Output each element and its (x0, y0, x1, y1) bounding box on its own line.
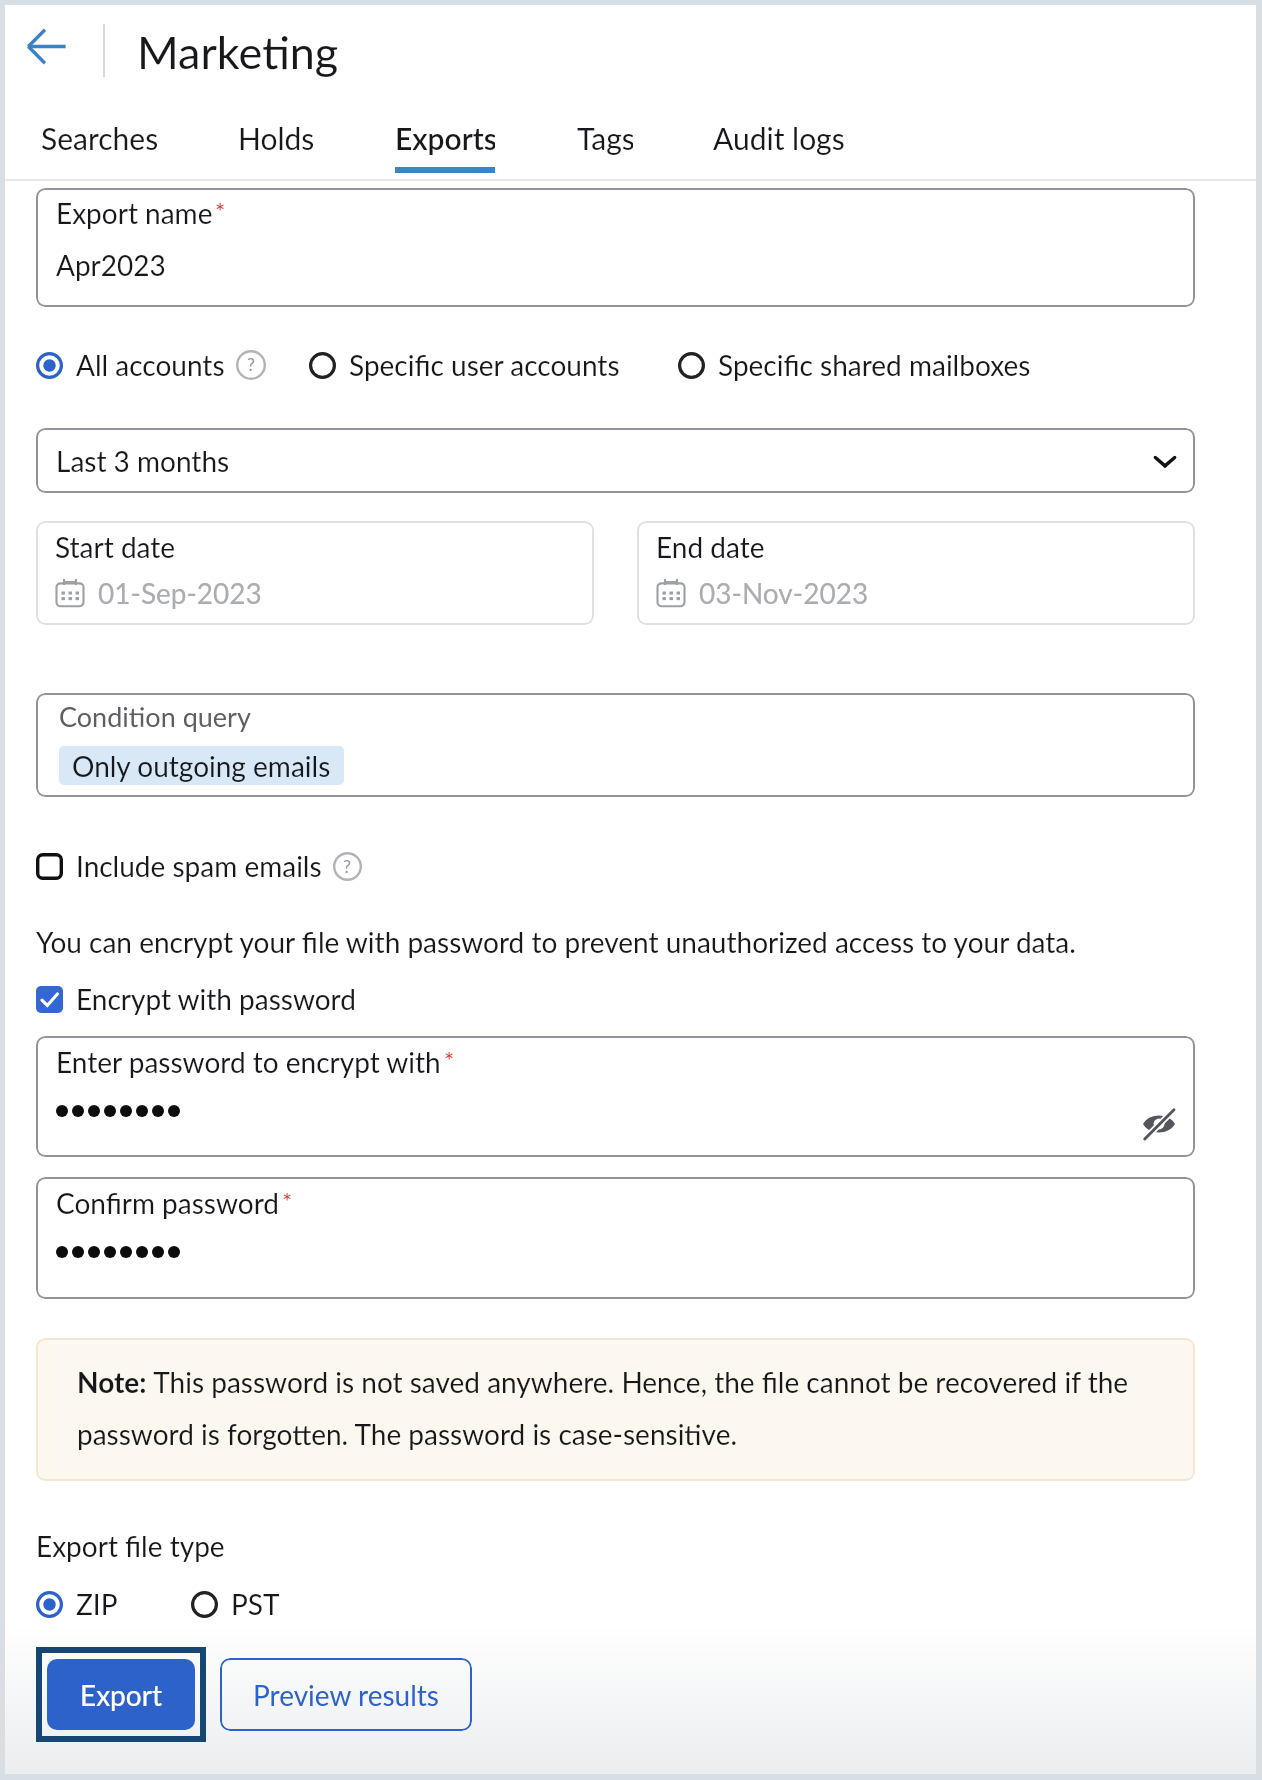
staticText: You can encrypt your file with password … (36, 925, 1076, 959)
staticText: Preview results (253, 1678, 439, 1712)
staticText: Exports (395, 120, 495, 156)
button[interactable]: Start date (36, 521, 594, 625)
button[interactable]: Audit logs (712, 98, 846, 181)
staticText: End date (656, 530, 765, 564)
staticText: * (444, 1045, 455, 1074)
staticText: Include spam emails (76, 849, 322, 883)
button[interactable]: Export name (36, 188, 1195, 307)
button[interactable]: Exports (395, 98, 495, 181)
button[interactable]: Include spam emails (36, 849, 362, 883)
staticText: Only outgoing emails (72, 749, 331, 783)
button[interactable]: Holds (238, 98, 314, 181)
staticText: ? (343, 855, 352, 877)
button[interactable]: Back (18, 18, 74, 74)
button[interactable]: Confirm password (36, 1177, 1195, 1299)
button[interactable]: Last 3 months (36, 428, 1195, 493)
staticText: Export (80, 1678, 162, 1712)
staticText: 03-Nov-2023 (699, 576, 869, 610)
staticText: This password is not saved anywhere. Hen… (147, 1365, 1129, 1399)
staticText: Searches (41, 120, 157, 156)
staticText: Encrypt with password (76, 982, 356, 1016)
staticText: Specific shared mailboxes (718, 348, 1031, 382)
staticText: ? (247, 353, 256, 375)
staticText: * (215, 196, 226, 225)
button[interactable]: Preview results (220, 1658, 472, 1731)
staticText: Audit logs (713, 120, 845, 156)
button[interactable]: Searches (41, 98, 157, 181)
staticText: Note: (77, 1365, 147, 1399)
staticText: Enter password to encrypt with (56, 1045, 441, 1079)
staticText: Confirm password (56, 1186, 279, 1220)
staticText: Export file type (36, 1529, 225, 1563)
button[interactable]: ZIP (36, 1587, 118, 1621)
staticText: All accounts (76, 348, 225, 382)
staticText: Export name (56, 196, 213, 230)
staticText: Tags (577, 120, 633, 156)
button[interactable]: Enter password to encrypt with (36, 1036, 1195, 1157)
staticText: ZIP (76, 1587, 118, 1621)
staticText: Condition query (59, 700, 251, 732)
staticText: Marketing (137, 25, 339, 79)
staticText: password is forgotten. The password is c… (77, 1417, 738, 1451)
staticText: 01-Sep-2023 (98, 576, 262, 610)
button[interactable]: All accounts (36, 348, 266, 382)
button[interactable]: Condition query (36, 693, 1195, 797)
button[interactable]: Encrypt with password (36, 982, 356, 1016)
staticText: Specific user accounts (349, 348, 620, 382)
staticText: Last 3 months (56, 444, 230, 478)
button[interactable]: PST (191, 1587, 280, 1621)
button[interactable]: Tags (577, 98, 633, 181)
staticText: Start date (55, 530, 176, 564)
button[interactable]: Specific user accounts (309, 348, 620, 382)
staticText: Apr2023 (56, 248, 166, 282)
button[interactable]: Export (47, 1659, 195, 1730)
button[interactable]: End date (637, 521, 1195, 625)
button[interactable]: Specific shared mailboxes (678, 348, 1031, 382)
staticText: Holds (238, 120, 314, 156)
button[interactable]: Show password (1137, 1102, 1181, 1146)
staticText: * (282, 1186, 293, 1215)
staticText: PST (231, 1587, 280, 1621)
